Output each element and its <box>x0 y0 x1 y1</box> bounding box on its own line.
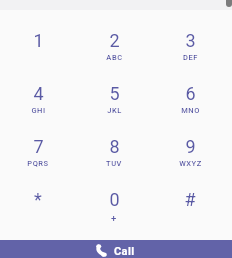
button[interactable]: 5 <box>76 81 152 134</box>
staticText: WXYZ <box>179 159 202 168</box>
button[interactable]: 3 <box>152 28 228 81</box>
staticText: 6 <box>185 83 196 104</box>
staticText: 0 <box>109 189 120 210</box>
button[interactable]: 2 <box>76 28 152 81</box>
staticText: 7 <box>33 136 44 157</box>
button[interactable]: * <box>0 187 76 240</box>
staticText: 4 <box>33 83 44 104</box>
staticText: MNO <box>181 106 200 115</box>
staticText: 5 <box>109 83 120 104</box>
staticText: 9 <box>185 136 196 157</box>
button[interactable]: # <box>152 187 228 240</box>
staticText: JKL <box>107 106 122 115</box>
staticText: 1 <box>33 30 44 51</box>
staticText: 2 <box>109 30 120 51</box>
button[interactable]: 0 <box>76 187 152 240</box>
staticText: Call <box>114 245 135 258</box>
button[interactable]: 1 <box>0 28 76 81</box>
button[interactable]: Call <box>0 240 232 258</box>
button[interactable]: 7 <box>0 134 76 187</box>
button[interactable]: 4 <box>0 81 76 134</box>
staticText: PQRS <box>27 159 49 168</box>
staticText: 8 <box>109 136 120 157</box>
staticText: ABC <box>106 53 123 62</box>
staticText: 3 <box>185 30 196 51</box>
button[interactable]: 8 <box>76 134 152 187</box>
staticText: # <box>184 189 196 210</box>
staticText: * <box>34 189 42 210</box>
staticText: GHI <box>31 106 46 115</box>
button[interactable]: 6 <box>152 81 228 134</box>
staticText: + <box>111 213 117 224</box>
staticText: DEF <box>183 53 198 62</box>
button[interactable]: 9 <box>152 134 228 187</box>
staticText: TUV <box>106 159 122 168</box>
